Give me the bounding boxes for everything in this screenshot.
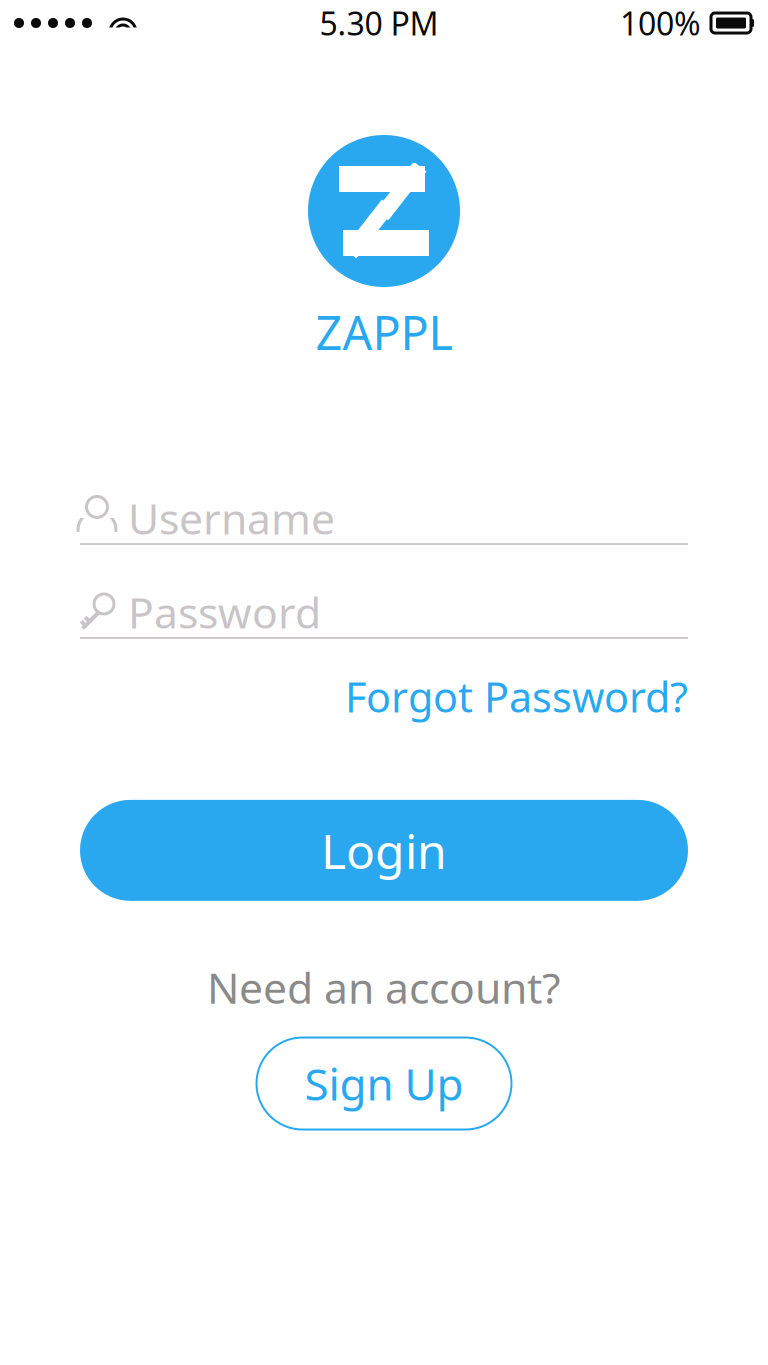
button[interactable]: Sign Up bbox=[256, 1037, 511, 1129]
staticText: Password bbox=[128, 584, 321, 640]
staticText: Need an account? bbox=[207, 959, 561, 1016]
staticText: Login bbox=[321, 818, 447, 882]
button[interactable]: Login bbox=[80, 800, 688, 901]
staticText: ZAPPL bbox=[315, 301, 452, 363]
staticText: 5.30 PM bbox=[319, 2, 438, 44]
button[interactable]: Forgot Password? bbox=[345, 661, 688, 732]
staticText: Sign Up bbox=[304, 1054, 463, 1113]
staticText: Username bbox=[128, 490, 335, 546]
staticText: Forgot Password? bbox=[345, 669, 688, 724]
staticText: 100% bbox=[620, 2, 701, 44]
